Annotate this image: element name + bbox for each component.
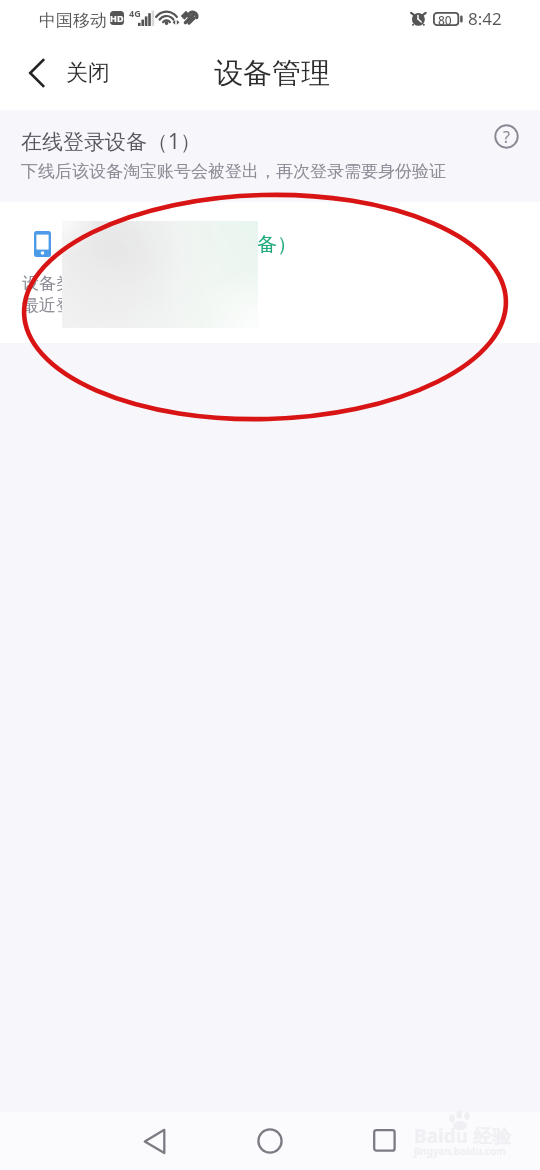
staticText: 8:42 [468,7,502,30]
button[interactable]: 关闭 [18,47,124,99]
staticText: Baidu 经验 [414,1123,511,1149]
button[interactable]: 主页 [241,1117,299,1165]
button[interactable]: 帮助 [493,123,520,150]
staticText: （当前设备） [177,232,297,257]
staticText: jingyan.baidu.com [414,1144,506,1158]
staticText: 关闭 [66,59,110,87]
staticText: 最近登录：2021-04-22 [22,293,196,316]
staticText: ? [503,126,510,148]
button[interactable]: （当前设备） [0,202,540,343]
staticText: HD [110,12,124,24]
staticText: 中国移动 [39,10,107,31]
staticText: 4G [129,7,141,19]
button[interactable]: 最近任务 [356,1117,414,1165]
staticText: 在线登录设备（1） [21,127,202,156]
staticText: 下线后该设备淘宝账号会被登出，再次登录需要身份验证 [21,161,446,182]
staticText: 设备管理 [214,55,330,92]
staticText: 设备类型：Android [22,271,171,294]
staticText: 80 [438,12,452,26]
button[interactable]: 返回 [126,1117,184,1165]
